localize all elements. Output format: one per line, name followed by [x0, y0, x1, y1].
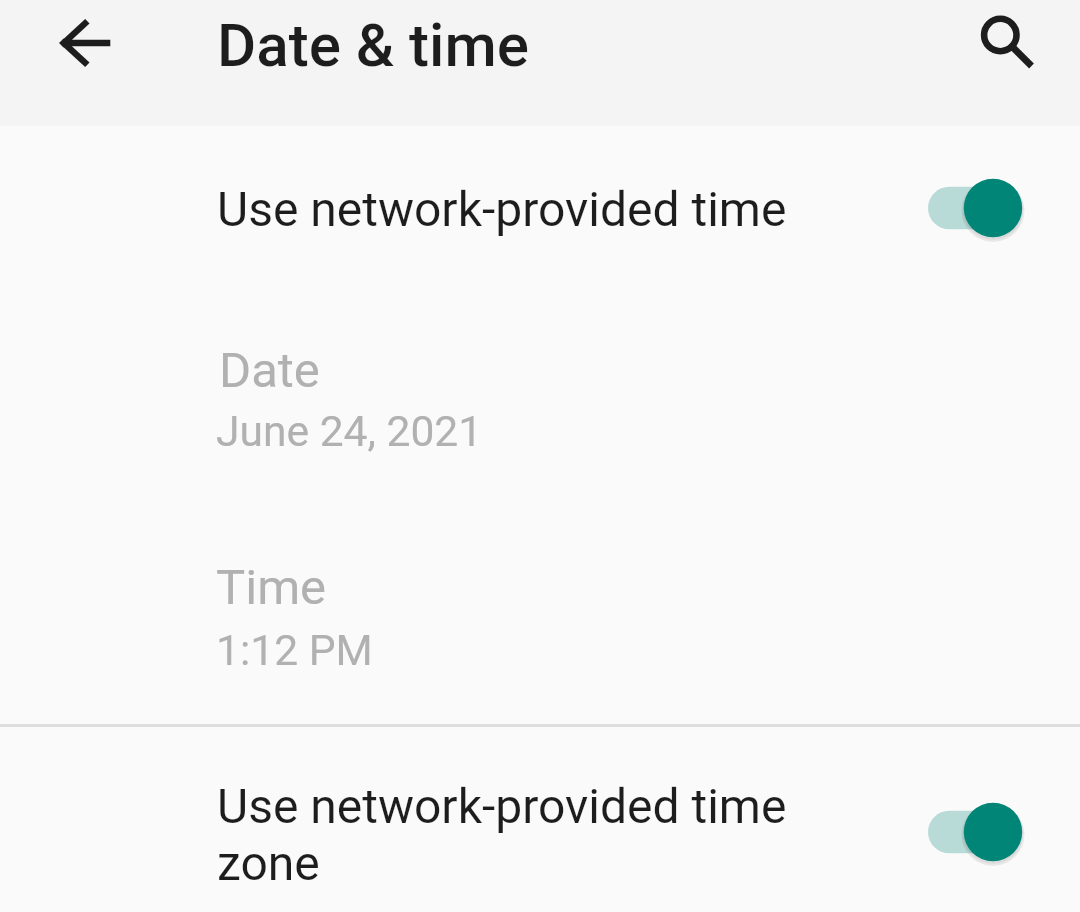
button[interactable]: Search	[952, 0, 1048, 83]
button[interactable]	[0, 288, 1080, 506]
staticText: Time	[216, 559, 327, 616]
button[interactable]	[0, 506, 1080, 723]
button[interactable]	[0, 126, 1080, 288]
staticText: Date & time	[217, 10, 529, 80]
staticText: Use network-provided time zone	[217, 778, 817, 892]
button[interactable]: Toggle	[916, 163, 1051, 253]
button[interactable]: Toggle	[916, 787, 1051, 877]
button[interactable]	[0, 726, 1080, 912]
staticText: Date	[219, 342, 320, 399]
staticText: Use network-provided time	[217, 181, 787, 237]
staticText: 1:12 PM	[216, 625, 373, 675]
button[interactable]: Back	[38, 0, 134, 91]
staticText: June 24, 2021	[216, 406, 483, 456]
